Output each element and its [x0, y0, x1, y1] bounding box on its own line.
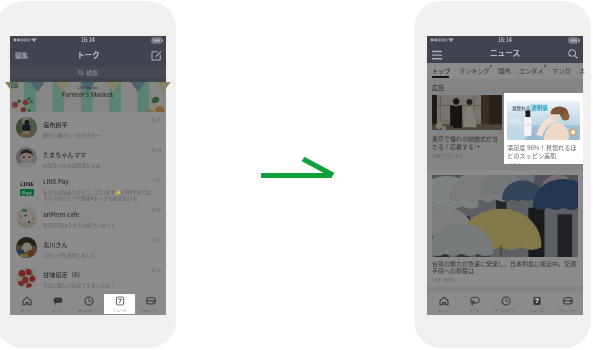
- button[interactable]: ランキング: [459, 66, 490, 75]
- staticText: タイムライン: [78, 308, 99, 313]
- staticText: スタンプを送信しました: [43, 251, 96, 258]
- staticText: 国内: [498, 66, 511, 75]
- staticText: LINE Cosme: [507, 162, 533, 164]
- button[interactable]: 見惚れる: [504, 93, 583, 164]
- button[interactable]: トップ: [432, 66, 451, 75]
- staticText: エンタメ: [519, 66, 544, 75]
- button[interactable]: ス: [579, 66, 583, 75]
- staticText: LINE Pay: [43, 177, 69, 186]
- button[interactable]: LINE: [10, 172, 166, 202]
- staticText: 18:00: [151, 207, 162, 213]
- button[interactable]: 検索: [10, 67, 166, 78]
- staticText: ホーム: [438, 308, 449, 313]
- staticText: 16:50: [151, 237, 162, 243]
- button[interactable]: 塩布創平: [10, 112, 166, 142]
- staticText: Pay: [22, 189, 32, 196]
- staticText: 台風の勢力が急速に発達し、日本列島に接近中。交通手段への影響は: [432, 259, 578, 274]
- staticText: 甘味協定（6）: [43, 270, 84, 279]
- button[interactable]: タイムライン: [73, 294, 104, 314]
- staticText: 東京で憧れの結婚式が当たる！応募する→: [432, 134, 502, 151]
- button[interactable]: 編集: [15, 50, 29, 60]
- staticText: ニュース: [113, 308, 127, 313]
- staticText: Farmer's Market: [62, 90, 114, 98]
- staticText: 確かに確かに！わかるわー: [43, 131, 101, 138]
- button[interactable]: ニュース: [521, 294, 552, 314]
- staticText: 塩布創平: [43, 120, 68, 129]
- staticText: 似合ないものは別度だよね: [43, 161, 101, 168]
- staticText: 16:25: [151, 117, 162, 123]
- button[interactable]: 甘味協定（6）: [10, 262, 166, 292]
- staticText: 見惚れる: [512, 105, 531, 112]
- staticText: 北川さん: [43, 240, 68, 249]
- staticText: LINEブライダル: [432, 153, 464, 159]
- staticText: ウォレット: [142, 308, 159, 313]
- button[interactable]: ariMom cafe: [10, 202, 166, 232]
- staticText: トーク: [469, 308, 480, 313]
- staticText: ウォレット: [559, 308, 576, 313]
- staticText: 友だち追加ありがとうございます✨ LINE Payではスマホのひとつで簡単&おト…: [43, 188, 151, 201]
- staticText: ランキング: [459, 66, 490, 75]
- staticText: 16:04: [151, 147, 162, 153]
- staticText: タイムライン: [495, 308, 516, 313]
- staticText: 透明感: [531, 104, 548, 112]
- staticText: LINE Cosme: [507, 153, 532, 159]
- staticText: 16:14: [81, 36, 95, 44]
- button[interactable]: 満足度 96%！見惚れるほどのスッピン美肌: [507, 95, 578, 159]
- staticText: トーク: [52, 308, 63, 313]
- staticText: ホーム: [21, 308, 32, 313]
- staticText: 満足度 96%！見惚れるほどのスッピン美肌: [507, 143, 580, 160]
- button[interactable]: Close ad: [159, 84, 164, 89]
- staticText: トーク: [77, 49, 100, 60]
- button[interactable]: ホーム: [427, 294, 459, 314]
- button[interactable]: 国内: [498, 66, 511, 75]
- button[interactable]: たまちゃんママ: [10, 142, 166, 172]
- button[interactable]: ウォレット: [552, 294, 583, 314]
- button[interactable]: Search: [568, 49, 578, 59]
- staticText: ニュース: [530, 308, 544, 313]
- staticText: ス: [579, 66, 583, 75]
- staticText: 16:26: [151, 267, 162, 273]
- staticText: 16:14: [498, 36, 512, 44]
- staticText: LINE NEWS: [432, 277, 455, 283]
- staticText: 満足度 96%！見惚れるほどのスッピン美肌: [507, 134, 578, 151]
- staticText: ニュース: [490, 47, 520, 58]
- button[interactable]: 北川さん: [10, 232, 166, 262]
- button[interactable]: マンガ: [552, 66, 571, 75]
- button[interactable]: Menu: [432, 49, 442, 59]
- button[interactable]: エンタメ: [519, 66, 544, 75]
- staticText: AD: [12, 83, 17, 88]
- button[interactable]: ニュース: [104, 294, 135, 314]
- staticText: LINE: [20, 180, 34, 188]
- button[interactable]: Compose message: [152, 51, 161, 60]
- staticText: 6:00: [153, 177, 162, 183]
- staticText: 広告: [432, 83, 445, 92]
- staticText: たまちゃんママ: [43, 150, 87, 159]
- staticText: 毎月20日はうずらの卵プレゼント: [43, 221, 116, 228]
- button[interactable]: トーク: [459, 294, 490, 314]
- staticText: LINE Market: [78, 85, 99, 90]
- button[interactable]: 東京で憧れの結婚式が当たる！応募する→: [432, 95, 502, 159]
- staticText: 今日に新しいお店できましたよ！: [43, 281, 115, 288]
- button[interactable]: LINE Market: [10, 82, 166, 112]
- staticText: トップ: [432, 66, 451, 75]
- button[interactable]: タイムライン: [490, 294, 521, 314]
- button[interactable]: トーク: [42, 294, 73, 314]
- button[interactable]: ウォレット: [135, 294, 166, 314]
- staticText: 検索: [86, 68, 99, 77]
- staticText: ariMom cafe: [43, 210, 80, 219]
- staticText: マンガ: [552, 66, 571, 75]
- button[interactable]: ホーム: [10, 294, 42, 314]
